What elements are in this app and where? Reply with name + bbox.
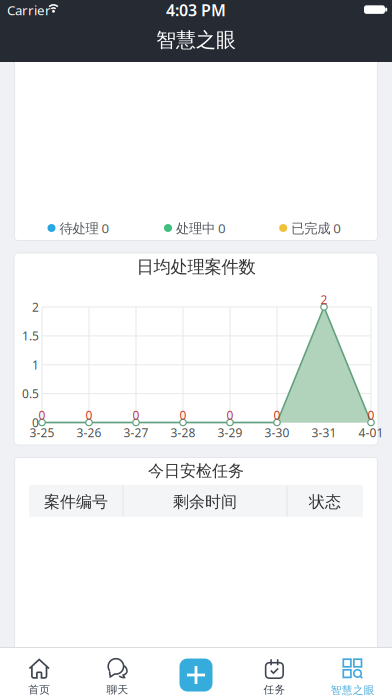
staticText: 3-30	[264, 424, 289, 440]
staticText: 0	[367, 407, 374, 423]
staticText: 0	[179, 407, 186, 423]
staticText: 3-29	[217, 424, 242, 440]
staticText: 案件编号	[44, 492, 108, 512]
staticText: 1	[32, 357, 39, 373]
staticText: 0	[132, 407, 139, 423]
staticText: 3-31	[311, 424, 336, 440]
staticText: 0	[32, 414, 39, 430]
button[interactable]: 任务	[235, 647, 314, 696]
staticText: 2	[32, 299, 39, 315]
staticText: 待处理 0	[59, 219, 109, 237]
staticText: 任务	[263, 683, 285, 696]
staticText: 今日安检任务	[148, 461, 244, 481]
staticText: 4-01	[358, 424, 383, 440]
staticText: 处理中 0	[176, 219, 226, 237]
staticText: 智慧之眼	[156, 28, 236, 52]
staticText: 0	[85, 407, 92, 423]
staticText: 3-28	[170, 424, 195, 440]
staticText: 2	[320, 291, 327, 307]
staticText: 首页	[28, 683, 50, 696]
button[interactable]: 新增	[157, 647, 235, 696]
button[interactable]: 聊天	[78, 647, 157, 696]
button[interactable]: 首页	[0, 647, 78, 696]
staticText: 0	[226, 407, 233, 423]
staticText: 4:03 PM	[166, 0, 226, 21]
staticText: 0	[273, 407, 280, 423]
staticText: 剩余时间	[173, 492, 237, 512]
staticText: Carrier	[7, 1, 51, 19]
staticText: 0.5	[22, 386, 39, 402]
staticText: 3-26	[76, 424, 101, 440]
staticText: 智慧之眼	[331, 684, 375, 696]
staticText: 1.5	[22, 328, 39, 344]
staticText: 3-25	[29, 424, 54, 440]
staticText: 状态	[309, 492, 341, 512]
staticText: 3-27	[123, 424, 148, 440]
staticText: 日均处理案件数	[136, 256, 255, 278]
staticText: 已完成 0	[291, 219, 341, 237]
button[interactable]: 智慧之眼	[314, 647, 392, 696]
staticText: 聊天	[107, 683, 129, 696]
staticText: 0	[38, 407, 45, 423]
